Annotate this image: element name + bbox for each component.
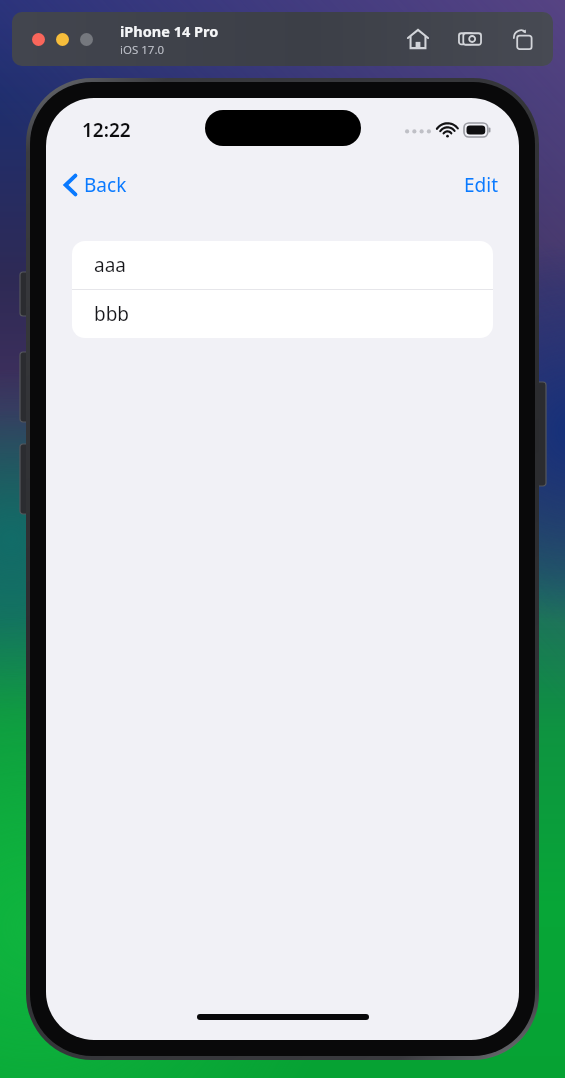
button[interactable]: Minimize bbox=[56, 33, 69, 46]
button[interactable]: aaa bbox=[72, 241, 493, 289]
button[interactable]: bbb bbox=[72, 290, 493, 338]
staticText: iOS 17.0 bbox=[120, 42, 165, 58]
button[interactable]: Zoom bbox=[80, 33, 93, 46]
button[interactable]: Close bbox=[32, 33, 45, 46]
staticText: Edit bbox=[464, 172, 499, 198]
button[interactable]: Rotate bbox=[507, 24, 537, 54]
staticText: 12:22 bbox=[82, 117, 131, 143]
button[interactable]: Home bbox=[403, 24, 433, 54]
staticText: bbb bbox=[94, 301, 130, 327]
staticText: Back bbox=[84, 172, 127, 198]
button[interactable]: Back bbox=[58, 166, 133, 204]
button[interactable]: Edit bbox=[458, 166, 505, 204]
staticText: iPhone 14 Pro bbox=[120, 21, 219, 41]
staticText: aaa bbox=[94, 252, 126, 278]
button[interactable]: Screenshot bbox=[455, 24, 485, 54]
